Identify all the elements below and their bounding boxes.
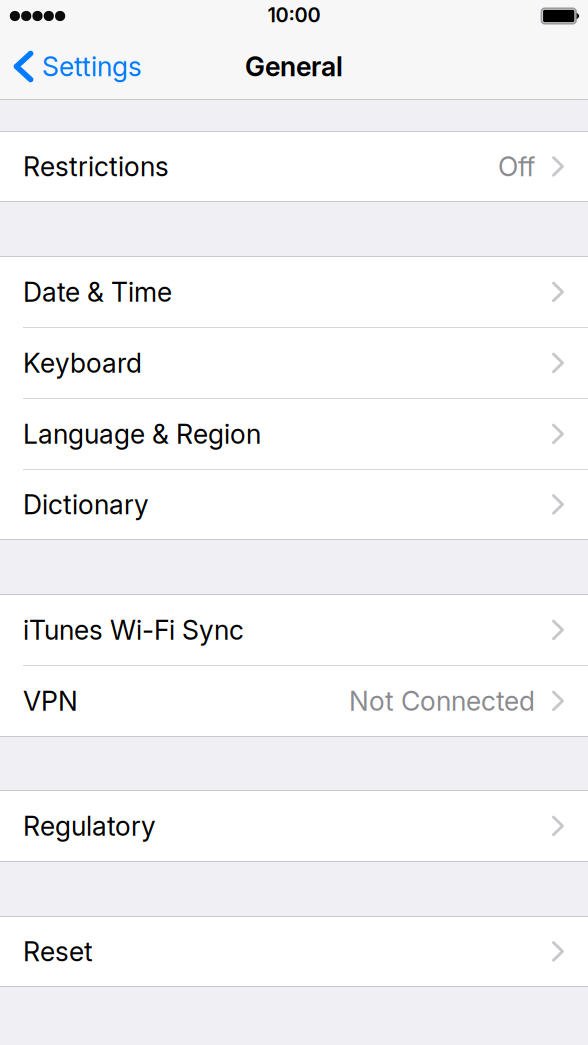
button[interactable]: Reset: [0, 917, 588, 986]
staticText: Date & Time: [23, 276, 172, 308]
staticText: Keyboard: [23, 347, 142, 379]
button[interactable]: Language & Region: [0, 399, 588, 469]
staticText: Settings: [42, 50, 142, 83]
button[interactable]: iTunes Wi-Fi Sync: [0, 595, 588, 665]
button[interactable]: Keyboard: [0, 328, 588, 398]
button[interactable]: Regulatory: [0, 791, 588, 861]
button[interactable]: Date & Time: [0, 257, 588, 327]
button[interactable]: Dictionary: [0, 470, 588, 539]
button[interactable]: VPN: [0, 666, 588, 736]
staticText: Not Connected: [349, 685, 535, 717]
staticText: Off: [498, 150, 535, 183]
button[interactable]: Restrictions: [0, 132, 588, 201]
staticText: General: [245, 50, 343, 83]
staticText: Regulatory: [23, 810, 156, 842]
staticText: Language & Region: [23, 418, 261, 450]
staticText: Restrictions: [23, 150, 169, 183]
staticText: 10:00: [267, 3, 320, 27]
button[interactable]: Back to Settings: [0, 30, 154, 99]
staticText: iTunes Wi-Fi Sync: [23, 614, 244, 646]
staticText: Reset: [23, 935, 93, 968]
staticText: Dictionary: [23, 488, 149, 521]
staticText: VPN: [23, 685, 78, 717]
